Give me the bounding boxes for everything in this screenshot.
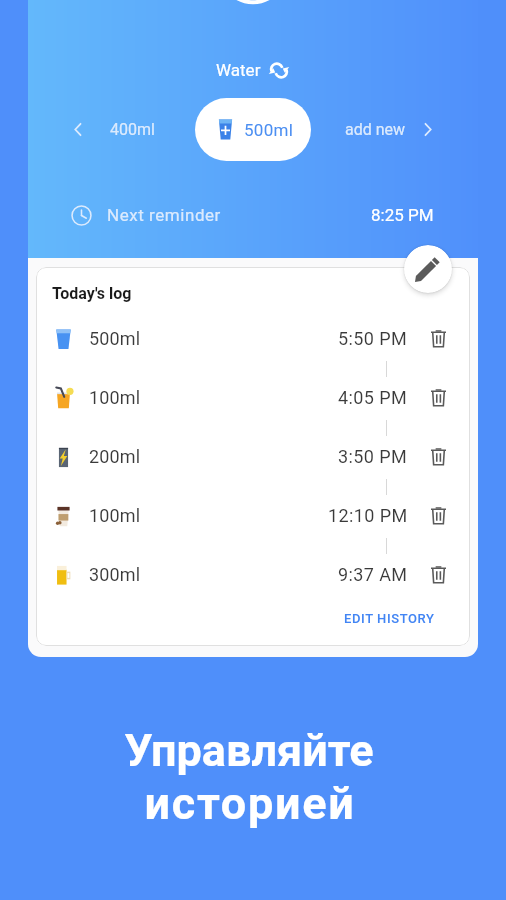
staticText: 5:50 PM (338, 328, 408, 349)
button[interactable]: Delete (423, 382, 453, 413)
button[interactable]: 500ml (36, 323, 470, 354)
button[interactable]: Edit (404, 245, 452, 293)
button[interactable]: Next reminder (71, 195, 434, 235)
staticText: 100ml (89, 505, 141, 526)
button[interactable]: 100ml (36, 500, 470, 531)
staticText: 200ml (89, 446, 141, 467)
staticText: 9:37 AM (338, 564, 408, 585)
button[interactable]: add new (339, 98, 412, 161)
button[interactable]: 100ml (36, 382, 470, 413)
button[interactable]: 400ml (104, 98, 161, 161)
button[interactable]: Delete (423, 559, 453, 590)
staticText: 100ml (89, 387, 141, 408)
staticText: 3:50 PM (338, 446, 408, 467)
staticText: add new (345, 120, 406, 139)
button[interactable]: Delete (423, 500, 453, 531)
button[interactable]: Delete (423, 323, 453, 354)
button[interactable]: Water (216, 60, 290, 80)
button[interactable]: Delete (423, 441, 453, 472)
staticText: 4:05 PM (338, 387, 408, 408)
staticText: EDIT HISTORY (344, 611, 435, 626)
button[interactable]: EDIT HISTORY (336, 604, 443, 633)
staticText: 500ml (244, 120, 294, 140)
staticText: 300ml (89, 564, 141, 585)
button[interactable]: Previous (62, 98, 94, 161)
staticText: 400ml (110, 120, 155, 139)
staticText: Today's log (52, 284, 132, 303)
button[interactable]: 500ml (195, 98, 311, 161)
staticText: 500ml (89, 328, 141, 349)
staticText: 8:25 PM (371, 205, 434, 225)
button[interactable]: 200ml (36, 441, 470, 472)
button[interactable]: 300ml (36, 559, 470, 590)
staticText: Управляйте (124, 724, 374, 777)
staticText: 12:10 PM (328, 505, 408, 526)
staticText: историей (144, 777, 356, 830)
staticText: Water (216, 60, 261, 80)
staticText: Next reminder (107, 205, 221, 225)
button[interactable]: Next (412, 98, 444, 161)
